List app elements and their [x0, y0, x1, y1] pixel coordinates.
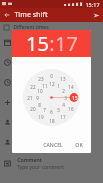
button[interactable]: clock: [0, 72, 103, 92]
button[interactable]: Back: [0, 8, 14, 22]
staticText: 22: [30, 84, 36, 90]
other: clock: [4, 59, 11, 66]
button[interactable]: calendar: [0, 32, 103, 52]
staticText: 1: [57, 83, 60, 89]
button[interactable]: Send: [89, 8, 103, 22]
button[interactable]: person: [0, 112, 103, 132]
staticText: 17: [60, 114, 66, 120]
staticText: 15: [26, 30, 49, 57]
staticText: 14: [68, 84, 74, 90]
staticText: 9: [36, 95, 39, 101]
button[interactable]: note: [0, 152, 103, 174]
button[interactable]: OK: [72, 139, 86, 150]
staticText: 3: [64, 95, 67, 101]
staticText: 5: [57, 107, 60, 113]
staticText: CANCEL: [43, 141, 63, 148]
staticText: 7: [43, 107, 46, 113]
staticText: 6: [50, 109, 53, 115]
staticText: 20: [30, 106, 36, 112]
button[interactable]: 17: [55, 30, 78, 57]
staticText: Different times: [13, 24, 49, 31]
other: plus: [4, 99, 11, 106]
other: person: [4, 139, 11, 146]
staticText: 18: [49, 118, 55, 124]
staticText: Time shift: [14, 10, 48, 20]
staticText: Date: [17, 39, 29, 46]
staticText: 10: [37, 88, 43, 94]
staticText: 16: [68, 106, 74, 112]
staticText: Add: [17, 99, 27, 106]
staticText: Type your comment: [17, 164, 64, 171]
button[interactable]: plus: [0, 92, 103, 112]
staticText: 2: [62, 88, 65, 94]
staticText: 13: [60, 76, 66, 82]
button[interactable]: 15: [26, 30, 49, 57]
staticText: 23: [38, 76, 44, 82]
staticText: 21: [27, 95, 33, 101]
staticText: 0: [50, 73, 53, 79]
other: person: [4, 119, 11, 126]
staticText: 4: [62, 102, 65, 108]
button[interactable]: CANCEL: [40, 139, 66, 150]
staticText: 17: [55, 30, 78, 57]
staticText: 8: [38, 102, 41, 108]
staticText: OK: [75, 141, 83, 148]
staticText: :: [49, 30, 55, 57]
staticText: 15: [72, 95, 78, 101]
staticText: 19: [38, 114, 44, 120]
staticText: Comment: [17, 156, 42, 163]
button[interactable]: person: [0, 132, 103, 152]
staticText: 11: [42, 83, 48, 89]
other: clock: [4, 79, 11, 86]
staticText: 15:17: [85, 1, 100, 8]
other: calendar: [4, 39, 11, 46]
other: note: [4, 160, 11, 167]
button[interactable]: Different times: [0, 22, 103, 32]
staticText: 12: [49, 81, 55, 87]
staticText: Person A: [17, 119, 39, 126]
button[interactable]: clock: [0, 52, 103, 72]
